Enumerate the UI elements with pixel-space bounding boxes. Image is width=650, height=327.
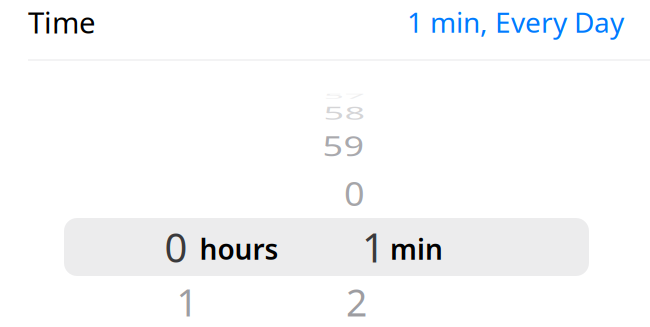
staticText: min bbox=[390, 230, 443, 268]
staticText: 58 bbox=[323, 89, 365, 137]
staticText: 59 bbox=[322, 122, 364, 170]
staticText: 1 bbox=[362, 220, 385, 273]
staticText: hours bbox=[199, 230, 278, 268]
staticText: 1 bbox=[176, 277, 197, 327]
staticText: 1 min, Every Day bbox=[407, 3, 624, 41]
staticText: Time bbox=[28, 2, 96, 41]
button[interactable]: Time bbox=[0, 0, 650, 59]
button[interactable]: Hours bbox=[0, 0, 262, 266]
staticText: 2 bbox=[346, 277, 367, 327]
staticText: 0 bbox=[344, 169, 365, 217]
staticText: 57 bbox=[323, 72, 365, 120]
staticText: 0 bbox=[164, 220, 187, 273]
button[interactable]: Minutes bbox=[0, 0, 262, 266]
